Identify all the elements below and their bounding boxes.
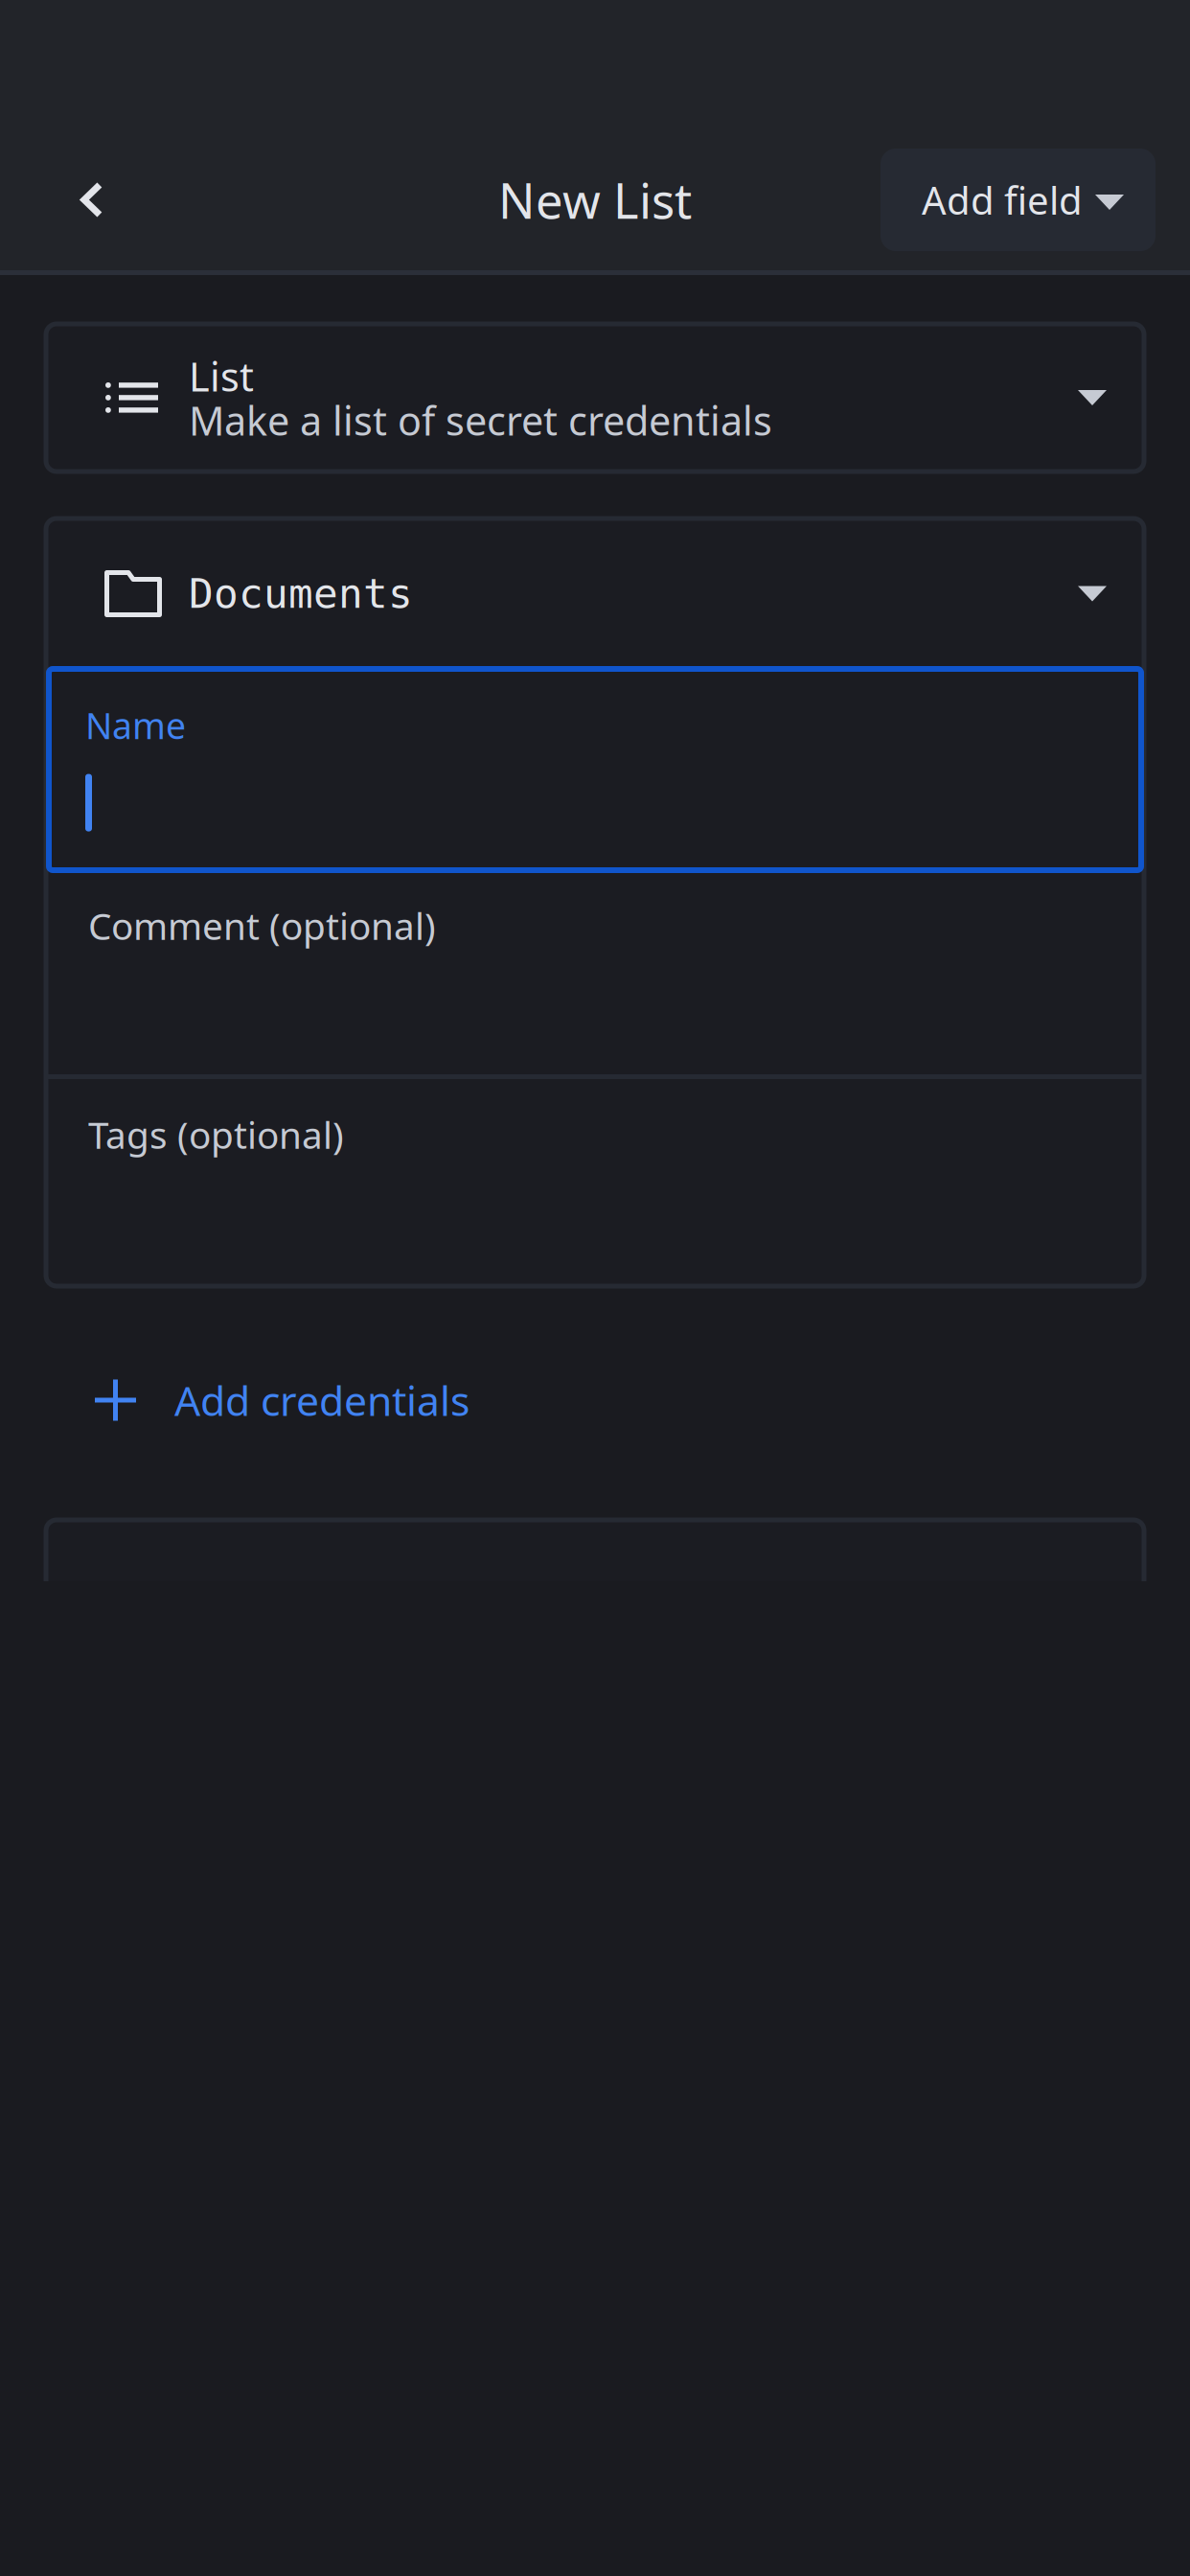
staticText: Documents	[189, 570, 413, 617]
staticText: Add credentials	[174, 1373, 469, 1427]
staticText: List	[189, 350, 254, 402]
button[interactable]: Add field	[881, 149, 1156, 251]
staticText: Comment (optional)	[88, 901, 436, 950]
button[interactable]: Documents	[46, 518, 1144, 669]
staticText: Make a list of secret credentials	[189, 394, 772, 447]
button[interactable]: Add credentials	[46, 1341, 1144, 1460]
button[interactable]: Back	[0, 149, 145, 251]
staticText: New List	[498, 168, 692, 232]
button[interactable]: List	[46, 324, 1144, 471]
staticText: Add field	[922, 174, 1083, 225]
staticText: Tags (optional)	[88, 1110, 344, 1159]
staticText: Name	[85, 701, 186, 749]
